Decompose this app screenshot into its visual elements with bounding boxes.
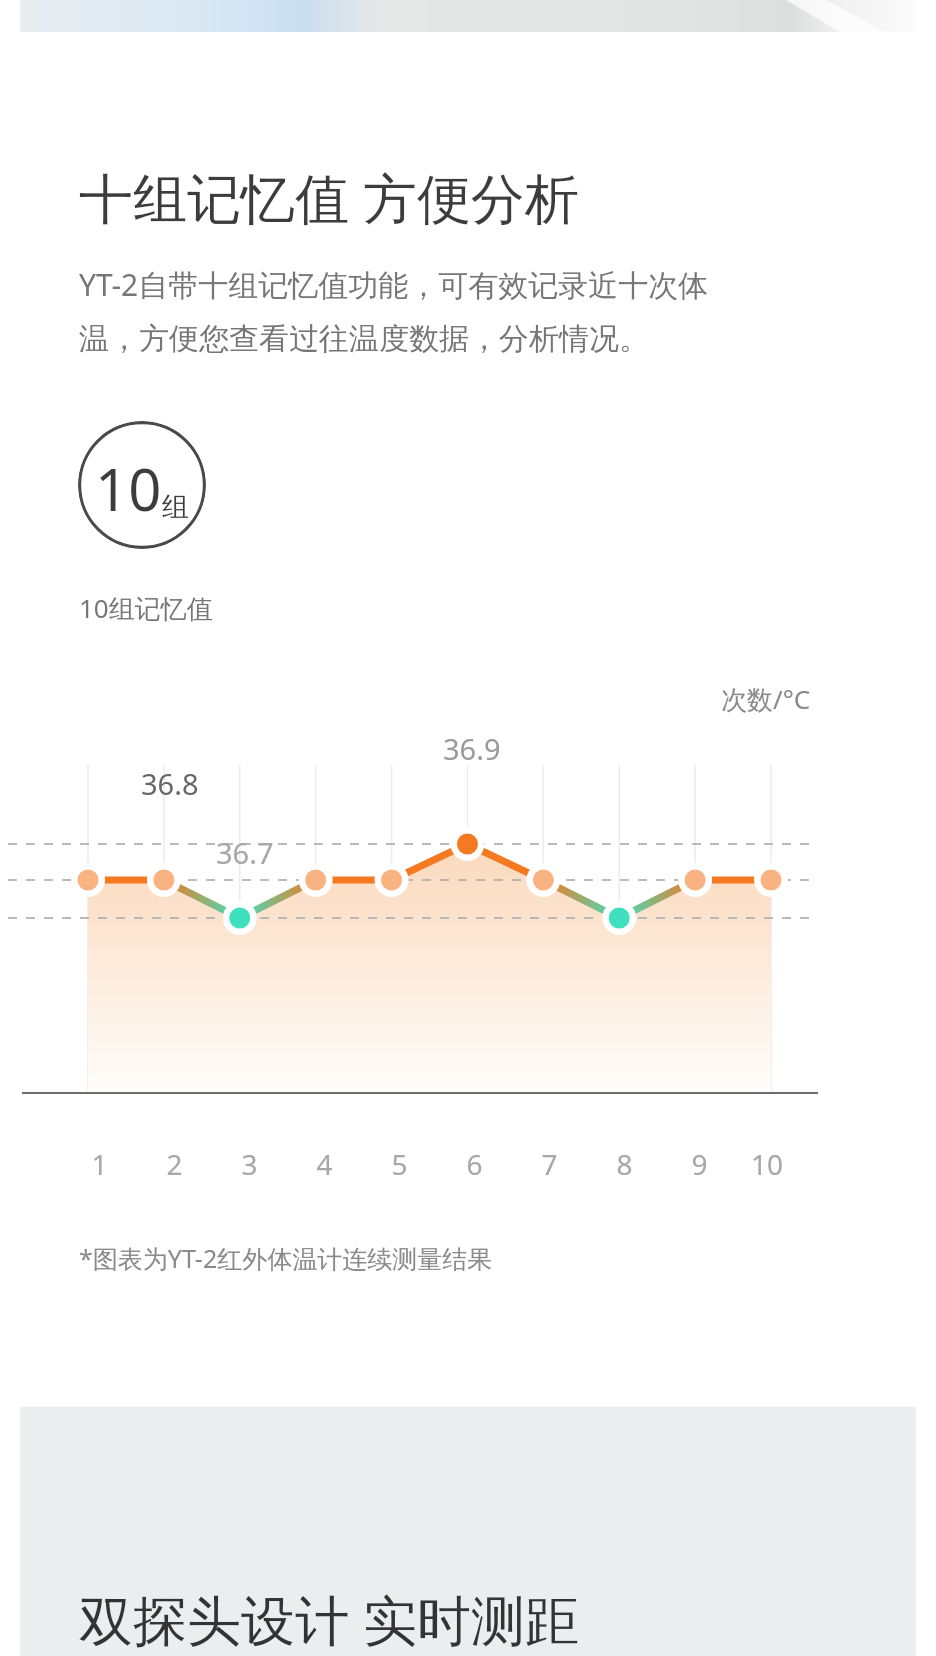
button[interactable]: 10 [78,421,206,549]
staticText: 36.7 [216,833,274,872]
staticText: 1 [62,1145,137,1183]
staticText: 10 [737,1145,797,1183]
staticText: 十组记忆值 方便分析 [79,160,580,234]
staticText: 6 [437,1145,512,1183]
staticText: 双探头设计 实时测距 [79,1582,580,1656]
staticText: 8 [587,1145,662,1183]
staticText: 10 [95,449,162,528]
staticText: 次数/°C [721,681,811,717]
staticText: 36.9 [443,729,501,768]
staticText: 36.8 [141,764,199,803]
staticText: *图表为YT-2红外体温计连续测量结果 [79,1241,493,1275]
staticText: 7 [512,1145,587,1183]
staticText: 4 [287,1145,362,1183]
staticText: 10组记忆值 [79,590,213,626]
staticText: 3 [212,1145,287,1183]
staticText: 5 [362,1145,437,1183]
staticText: YT-2自带十组记忆值功能，可有效记录近十次体 温，方便您查看过往温度数据，分析… [79,264,709,357]
staticText: 组 [162,490,189,524]
staticText: 9 [662,1145,737,1183]
staticText: 2 [137,1145,212,1183]
